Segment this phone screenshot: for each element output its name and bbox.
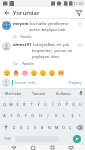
button[interactable]: 1 xyxy=(1,97,7,109)
staticText: 17:03 xyxy=(73,1,84,6)
staticText: U xyxy=(44,102,47,107)
button[interactable]: Ş xyxy=(68,109,76,121)
button[interactable]: 8 xyxy=(49,97,56,109)
button[interactable]: D xyxy=(15,109,22,121)
button[interactable]: Emoji xyxy=(38,68,47,77)
staticText: X xyxy=(20,125,23,130)
button[interactable]: 7 xyxy=(42,97,49,109)
button[interactable]: 5 xyxy=(28,97,35,109)
button[interactable]: 9 xyxy=(56,97,63,109)
button[interactable]: Merhaba xyxy=(0,89,26,97)
button[interactable]: Sesle yaz xyxy=(76,89,85,97)
button[interactable]: 6 xyxy=(35,97,42,109)
button[interactable]: Ö xyxy=(60,121,67,133)
staticText: 2 xyxy=(10,99,12,102)
button[interactable]: H xyxy=(36,109,44,121)
button[interactable]: Tamam xyxy=(26,89,51,97)
button[interactable]: Beğen xyxy=(77,42,83,48)
staticText: Ü xyxy=(79,102,82,107)
button[interactable]: X xyxy=(18,121,25,133)
button[interactable]: Ğ xyxy=(70,97,77,109)
button[interactable]: B xyxy=(39,121,46,133)
button[interactable]: Klavyeyi gizle xyxy=(66,145,76,150)
button[interactable]: G xyxy=(29,109,36,121)
button[interactable]: Geri xyxy=(9,145,19,150)
staticText: 7 xyxy=(45,99,47,102)
button[interactable]: I xyxy=(76,109,84,121)
staticText: K xyxy=(55,113,58,118)
staticText: S xyxy=(10,113,13,118)
staticText: 2s xyxy=(13,34,17,39)
staticText: Ğ xyxy=(72,102,75,107)
button[interactable]: Shift xyxy=(1,121,11,133)
button[interactable]: Ü xyxy=(77,97,84,109)
button[interactable]: Beğen xyxy=(77,21,83,27)
staticText: C xyxy=(27,125,30,130)
staticText: M xyxy=(55,125,59,130)
button[interactable]: ?123 xyxy=(1,134,14,144)
button[interactable]: Emoji xyxy=(2,68,11,77)
button[interactable]: N xyxy=(46,121,53,133)
button[interactable]: A xyxy=(1,109,8,121)
button[interactable]: 2 xyxy=(7,97,14,109)
button[interactable]: Yanıtla xyxy=(20,34,32,39)
button[interactable]: Emoji xyxy=(47,68,56,77)
staticText: I xyxy=(79,113,81,118)
staticText: 0 xyxy=(66,99,68,102)
button[interactable]: meyeni xyxy=(0,19,85,40)
staticText: meyeni xyxy=(13,21,29,27)
button[interactable]: J xyxy=(44,109,52,121)
button[interactable]: Z xyxy=(11,121,18,133)
staticText: 8 xyxy=(52,99,54,102)
button[interactable]: Sil xyxy=(74,121,84,133)
button[interactable]: ahmet91 xyxy=(0,40,85,67)
staticText: 5m xyxy=(13,61,19,66)
button[interactable]: Emoji xyxy=(56,68,65,77)
staticText: 4 xyxy=(24,99,26,102)
button[interactable]: Filtrele xyxy=(74,8,83,17)
staticText: fotoğrafları en çok beğenilen, yorum ve … xyxy=(32,42,75,60)
button[interactable]: Emoji xyxy=(20,68,29,77)
staticText: Kullanıcı xyxy=(56,91,71,96)
staticText: 9 xyxy=(59,99,61,102)
button[interactable]: Emoji xyxy=(29,68,38,77)
button[interactable]: S xyxy=(8,109,15,121)
button[interactable]: Emoji xyxy=(11,68,20,77)
button[interactable]: Geri xyxy=(2,8,11,17)
button[interactable]: Paylaş xyxy=(68,78,83,87)
staticText: Tamam xyxy=(32,91,46,96)
staticText: Merhaba xyxy=(5,91,22,96)
button[interactable]: C xyxy=(25,121,32,133)
staticText: Q xyxy=(3,102,6,107)
staticText: N xyxy=(48,125,51,130)
button[interactable]: Yorum ekle... xyxy=(12,80,68,85)
button[interactable]: Kullanıcı xyxy=(51,89,76,97)
button[interactable]: K xyxy=(52,109,60,121)
staticText: . xyxy=(64,137,66,142)
button[interactable]: Yanıtla xyxy=(22,61,34,66)
staticText: H xyxy=(39,113,42,118)
button[interactable]: Son uygulamalar xyxy=(47,145,57,150)
staticText: R xyxy=(23,102,26,107)
button[interactable]: F xyxy=(22,109,29,121)
button[interactable]: 0 xyxy=(63,97,70,109)
button[interactable]: L xyxy=(60,109,68,121)
staticText: 6 xyxy=(38,99,40,102)
staticText: Paylaş xyxy=(69,80,82,85)
staticText: 5 xyxy=(31,99,33,102)
staticText: T xyxy=(30,102,33,107)
button[interactable]: M xyxy=(53,121,60,133)
button[interactable]: Gönder xyxy=(69,134,84,144)
button[interactable]: 3 xyxy=(14,97,21,109)
staticText: J xyxy=(47,113,49,118)
button[interactable]: Ana ekran xyxy=(28,145,38,150)
staticText: G xyxy=(31,113,34,118)
staticText: P xyxy=(65,102,68,107)
staticText: Yorum ekle... xyxy=(14,80,39,85)
button[interactable]: V xyxy=(32,121,39,133)
button[interactable]: 4 xyxy=(21,97,28,109)
staticText: ahmet91 xyxy=(13,42,32,48)
button[interactable]: Ç xyxy=(67,121,74,133)
